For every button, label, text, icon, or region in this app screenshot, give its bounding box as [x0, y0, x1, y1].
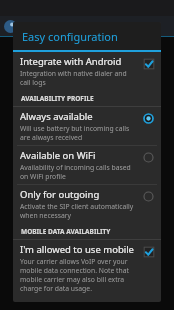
staticText: Activate the SIP client automatically wh…: [20, 202, 138, 220]
staticText: AVAILABILITY PROFILE: [21, 94, 94, 103]
button[interactable]: I'm allowed to use mobile: [13, 240, 161, 296]
button[interactable]: Toggle option: [142, 57, 155, 70]
staticText: Your carrier allows VoIP over your mobil…: [20, 257, 138, 293]
button[interactable]: Available on WiFi: [13, 146, 161, 184]
staticText: Available on WiFi: [20, 149, 96, 162]
button[interactable]: Integrate with Android: [13, 52, 161, 90]
button[interactable]: Select option: [142, 112, 155, 125]
button[interactable]: Select option: [142, 151, 155, 164]
staticText: Integrate with Android: [20, 55, 122, 68]
button[interactable]: Select option: [142, 190, 155, 203]
button[interactable]: Always available: [13, 107, 161, 145]
staticText: MOBILE DATA AVAILABILITY: [21, 227, 111, 236]
staticText: Always available: [20, 110, 93, 123]
staticText: I'm allowed to use mobile: [20, 243, 134, 256]
staticText: Will use battery but incoming calls are …: [20, 124, 138, 142]
staticText: Only for outgoing: [20, 188, 100, 201]
staticText: Easy configuration: [22, 29, 118, 44]
staticText: Availability of incoming calls based on …: [20, 163, 138, 181]
button[interactable]: Toggle option: [142, 245, 155, 258]
staticText: Integration with native dialer and call …: [20, 69, 138, 87]
button[interactable]: Only for outgoing: [13, 185, 161, 223]
